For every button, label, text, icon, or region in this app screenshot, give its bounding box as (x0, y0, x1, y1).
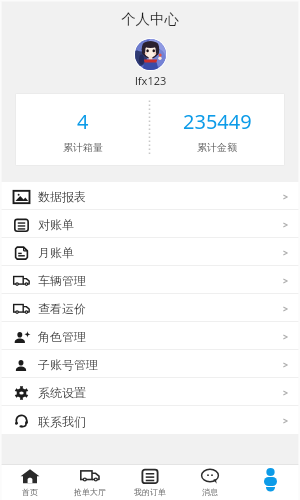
button[interactable]: 联系我们 (0, 406, 300, 434)
staticText: 系统设置 (38, 385, 86, 400)
button[interactable]: 我的 (240, 465, 300, 500)
staticText: 月账单 (38, 245, 74, 260)
staticText: 消息 (202, 487, 218, 497)
button[interactable]: 系统设置 (0, 378, 300, 406)
staticText: 个人中心 (121, 10, 179, 28)
button[interactable]: Avatar (135, 39, 166, 70)
staticText: 4 (77, 108, 89, 135)
button[interactable]: 车辆管理 (0, 266, 300, 294)
button[interactable]: 对账单 (0, 210, 300, 238)
staticText: 子账号管理 (38, 357, 98, 372)
staticText: 查看运价 (38, 301, 86, 316)
staticText: 累计金额 (197, 141, 237, 154)
staticText: 联系我们 (38, 414, 86, 429)
staticText: 车辆管理 (38, 273, 86, 288)
button[interactable]: 子账号管理 (0, 350, 300, 378)
staticText: lfx123 (135, 73, 167, 88)
button[interactable]: 月账单 (0, 238, 300, 266)
staticText: 235449 (183, 108, 252, 135)
staticText: 首页 (22, 487, 38, 497)
button[interactable]: 消息 (180, 465, 240, 500)
button[interactable]: 数据报表 (0, 182, 300, 210)
staticText: 我的订单 (134, 487, 166, 497)
staticText: 角色管理 (38, 329, 86, 344)
staticText: 对账单 (38, 217, 74, 232)
button[interactable]: 我的订单 (120, 465, 180, 500)
button[interactable]: 抢单大厅 (60, 465, 120, 500)
button[interactable]: 首页 (0, 465, 60, 500)
staticText: 数据报表 (38, 189, 86, 204)
button[interactable]: 查看运价 (0, 294, 300, 322)
staticText: 抢单大厅 (74, 487, 106, 497)
button[interactable]: 角色管理 (0, 322, 300, 350)
staticText: 累计箱量 (63, 141, 103, 154)
